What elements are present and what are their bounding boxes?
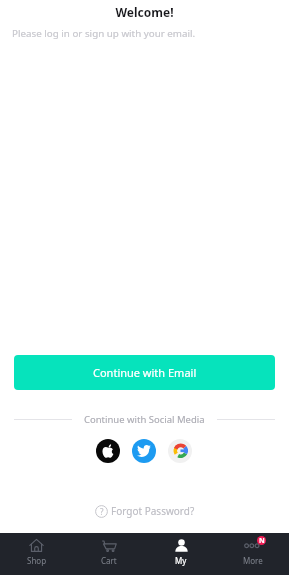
staticText: N xyxy=(259,536,265,545)
staticText: Forgot Password? xyxy=(111,504,195,518)
button[interactable]: Shop xyxy=(0,533,73,575)
button[interactable]: Sign in with Apple xyxy=(96,439,120,463)
button[interactable]: Cart xyxy=(73,533,145,575)
button[interactable]: ? xyxy=(89,500,201,522)
button[interactable]: Continue with Email xyxy=(14,355,275,390)
button[interactable]: My xyxy=(145,533,217,575)
staticText: Continue with Email xyxy=(93,365,197,380)
button[interactable]: Sign in with Google xyxy=(168,439,192,463)
staticText: More xyxy=(243,555,263,566)
button[interactable]: Sign in with Twitter xyxy=(132,439,156,463)
staticText: Please log in or sign up with your email… xyxy=(12,27,196,40)
staticText: ? xyxy=(100,506,104,517)
staticText: My xyxy=(175,555,187,566)
staticText: Shop xyxy=(27,555,47,566)
staticText: Continue with Social Media xyxy=(84,413,205,426)
button[interactable]: N xyxy=(217,533,289,575)
staticText: Welcome! xyxy=(0,4,289,20)
staticText: Cart xyxy=(101,555,117,566)
